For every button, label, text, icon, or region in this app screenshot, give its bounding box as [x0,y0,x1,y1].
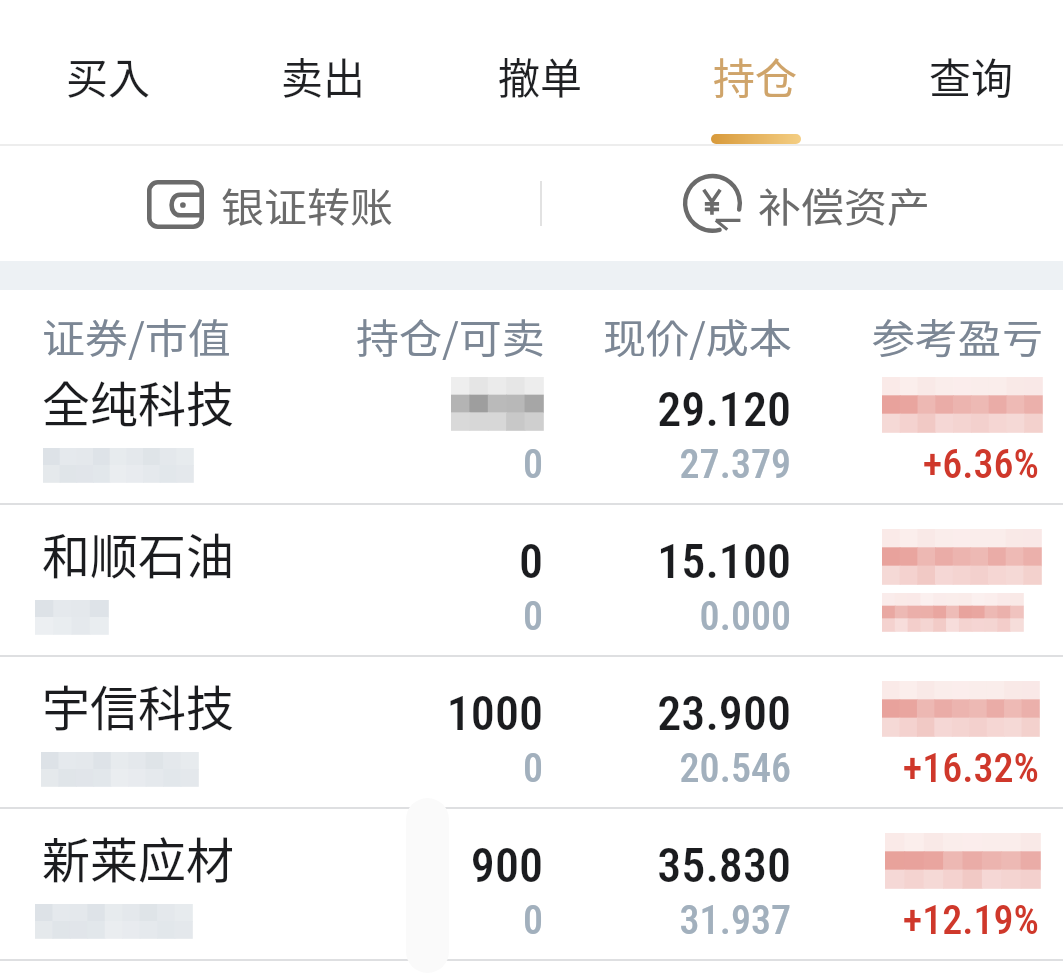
staticText: 0 [123,533,543,589]
staticText: 0 [123,593,543,640]
staticText: 撤单 [498,45,583,106]
staticText: +16.32% [619,745,1039,792]
staticText: +6.36% [619,441,1039,488]
staticText: 证券/市值 [42,306,231,364]
staticText: 卖出 [281,45,366,106]
staticText: 27.379 [371,441,791,488]
staticText: 31.937 [371,897,791,944]
staticText: 0 [123,441,543,488]
button[interactable]: 查询 [863,0,1063,146]
staticText: 宇信科技 [42,670,235,740]
staticText: 持仓 [713,45,798,106]
staticText: 查询 [929,45,1014,106]
button[interactable]: 买入 [0,0,216,146]
staticText: 银证转账 [221,175,393,233]
staticText: 0.000 [371,593,791,640]
staticText: 和顺石油 [42,518,235,588]
staticText: 15.100 [371,533,791,589]
staticText: +12.19% [619,897,1039,944]
other: Compensate assets [684,176,741,233]
button[interactable]: 持仓 [647,0,863,146]
staticText: 现价/成本 [603,306,792,364]
button[interactable]: 全纯科技 [0,353,1063,505]
staticText: 23.900 [371,685,791,741]
staticText: 0 [123,745,543,792]
staticText: 补偿资产 [758,175,930,233]
button[interactable]: 宇信科技 [0,657,1063,809]
staticText: 全纯科技 [42,366,235,436]
staticText: 35.830 [371,837,791,893]
other: Bank transfer [147,180,204,229]
staticText: 买入 [66,45,151,106]
staticText: 持仓/可卖 [356,306,545,364]
button[interactable]: Compensate assets [550,146,1063,261]
button[interactable]: 卖出 [215,0,431,146]
staticText: 900 [123,837,543,893]
staticText: 0 [123,897,543,944]
button[interactable]: 和顺石油 [0,505,1063,657]
button[interactable]: 撤单 [432,0,648,146]
staticText: 参考盈亏 [872,306,1044,364]
button[interactable]: 新莱应材 [0,809,1063,961]
staticText: 1000 [123,685,543,741]
button[interactable]: Bank transfer [0,146,540,261]
staticText: 20.546 [371,745,791,792]
staticText: 新莱应材 [42,822,235,892]
staticText: 29.120 [371,381,791,437]
